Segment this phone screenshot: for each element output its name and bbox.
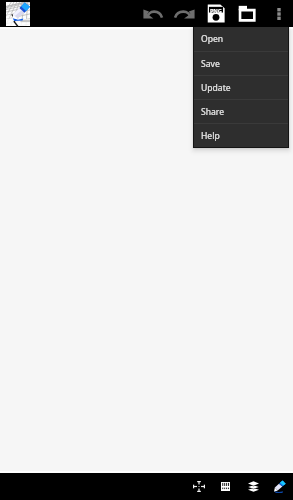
button[interactable]: Open: [194, 27, 288, 51]
button[interactable]: Open folder: [232, 0, 261, 27]
staticText: Save: [201, 58, 220, 70]
staticText: Share: [201, 106, 225, 118]
staticText: Open: [201, 33, 224, 45]
button[interactable]: App icon: [6, 2, 30, 26]
button[interactable]: Frames: [212, 473, 239, 500]
button[interactable]: Brush: [266, 473, 293, 500]
button[interactable]: Move: [185, 473, 212, 500]
button[interactable]: Undo: [138, 0, 167, 27]
button[interactable]: Redo: [170, 0, 199, 27]
button[interactable]: Help: [194, 124, 288, 147]
button[interactable]: More options: [266, 0, 291, 27]
button[interactable]: Layers: [240, 473, 267, 500]
button[interactable]: Update: [194, 76, 288, 99]
button[interactable]: Save as PNG: [201, 0, 230, 27]
staticText: Help: [201, 130, 220, 142]
button[interactable]: Share: [194, 100, 288, 123]
button[interactable]: Save: [194, 52, 288, 75]
staticText: Update: [201, 82, 231, 94]
staticText: PNG: [210, 7, 222, 15]
